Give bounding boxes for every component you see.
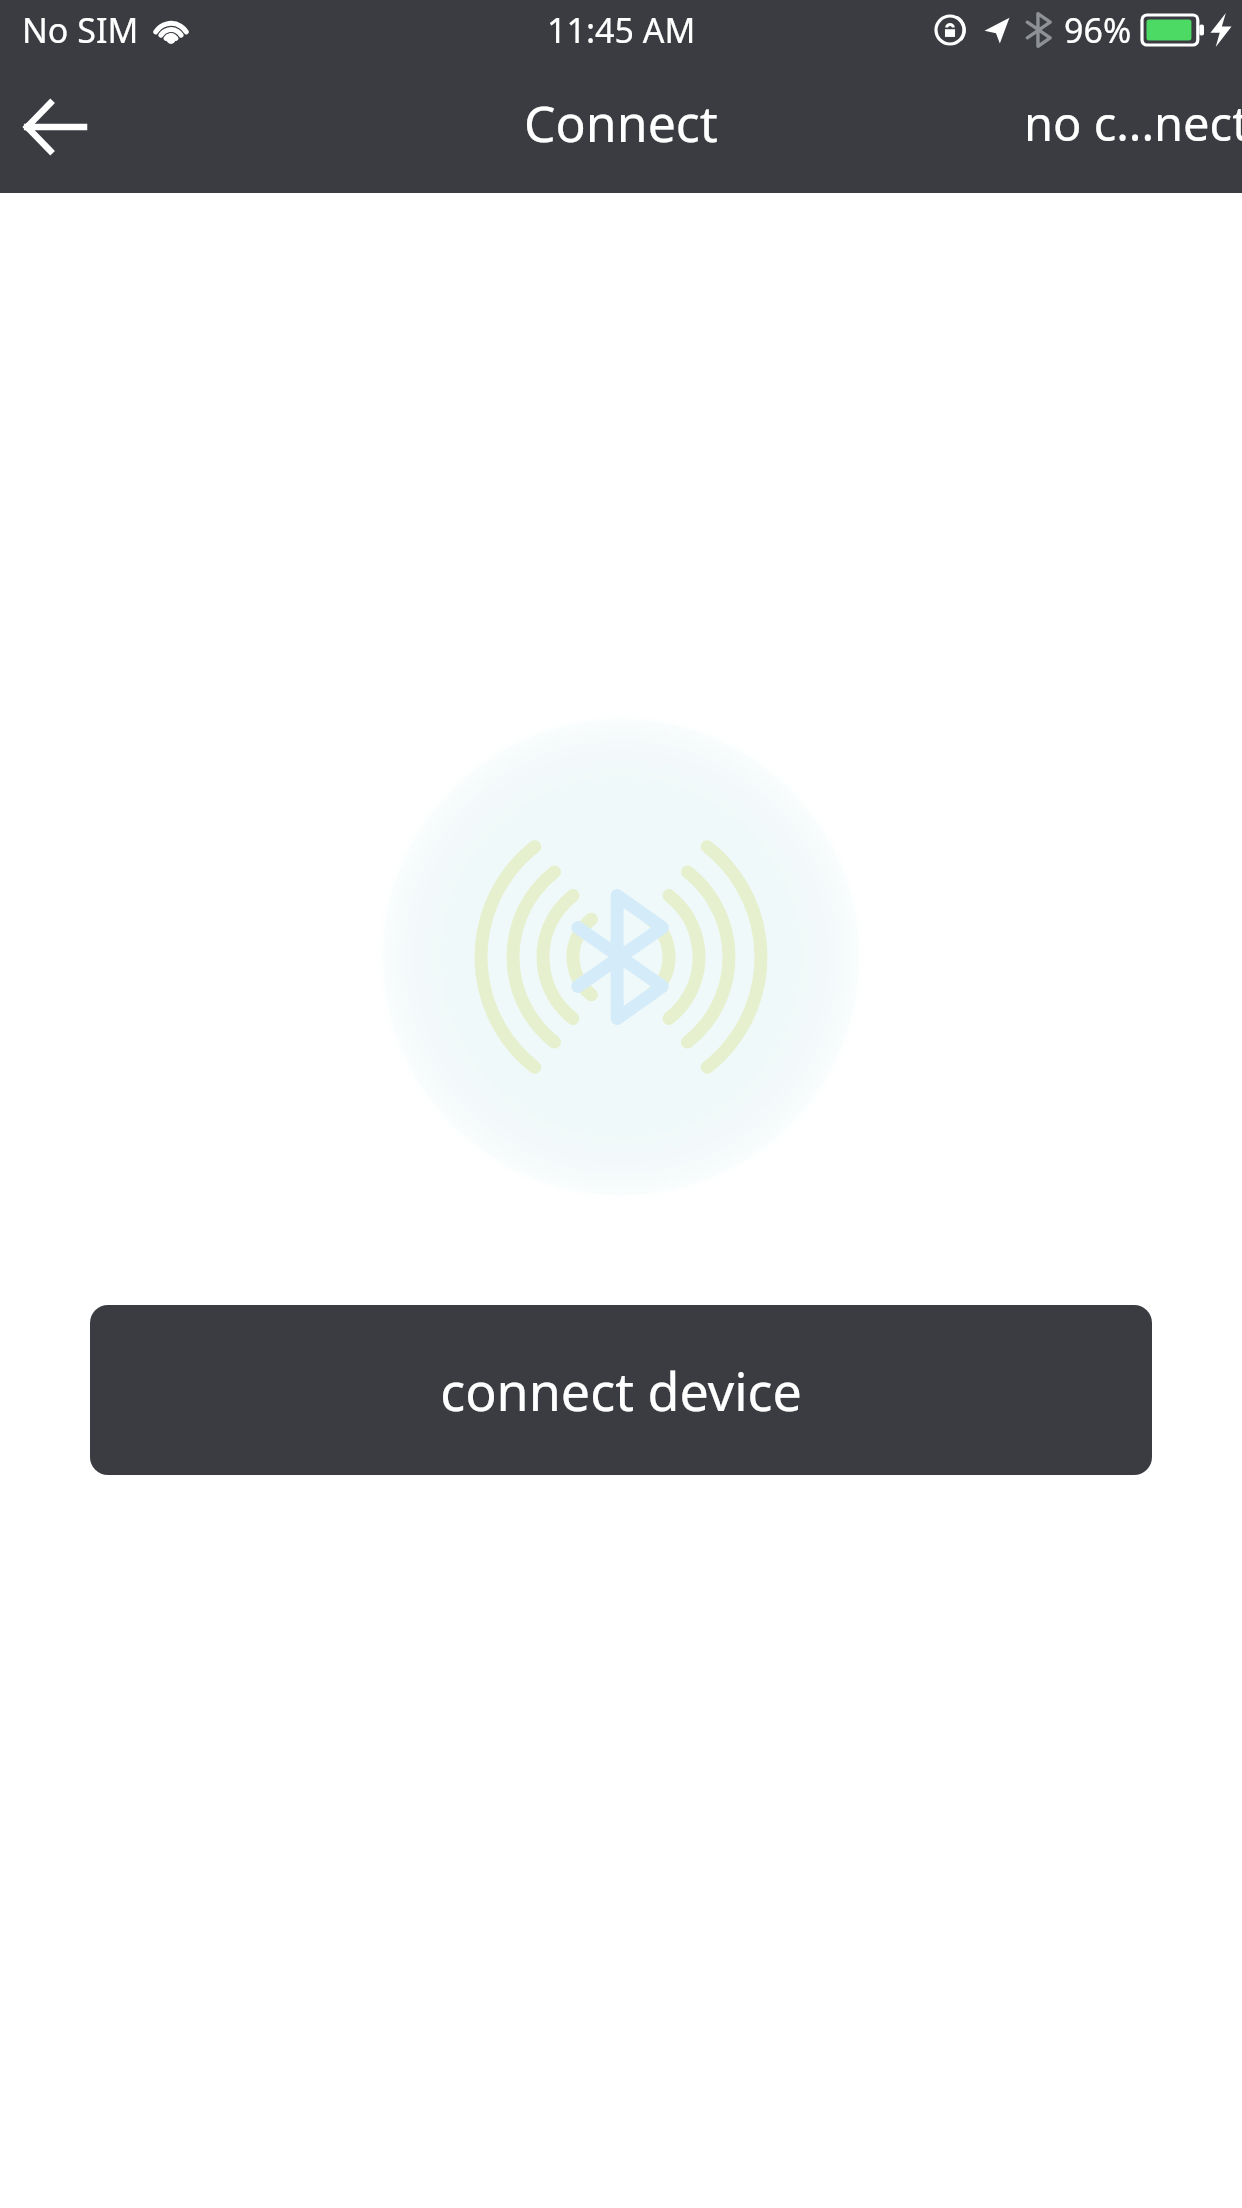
button[interactable]: connect device: [90, 1305, 1152, 1475]
staticText: no c...nect: [1024, 91, 1242, 155]
button[interactable]: no c...nect: [1016, 60, 1242, 193]
button[interactable]: Back: [0, 72, 110, 182]
staticText: No SIM: [22, 7, 139, 53]
staticText: Connect: [524, 89, 718, 157]
staticText: connect device: [440, 1355, 802, 1426]
staticText: 11:45 AM: [547, 7, 696, 53]
staticText: 96%: [1064, 7, 1132, 53]
